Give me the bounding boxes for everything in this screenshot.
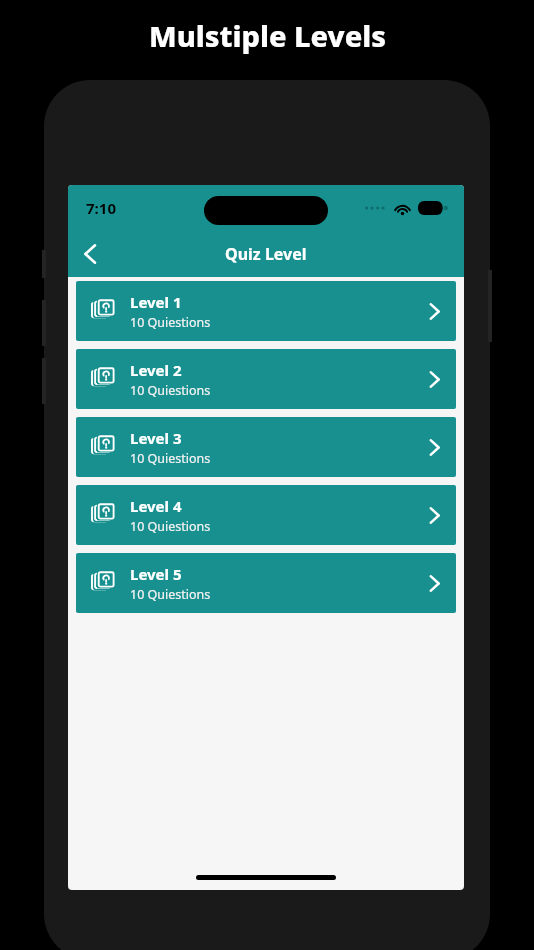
button[interactable]: Level 1	[76, 281, 456, 341]
button[interactable]: Level 5	[76, 553, 456, 613]
button[interactable]: Level 4	[76, 485, 456, 545]
staticText: 10 Quiestions	[130, 382, 211, 399]
staticText: Level 3	[130, 428, 182, 448]
staticText: Level 5	[130, 564, 182, 584]
staticText: 10 Quiestions	[130, 450, 211, 467]
staticText: 7:10	[86, 198, 116, 218]
staticText: Level 4	[130, 496, 182, 516]
staticText: Level 2	[130, 360, 182, 380]
button[interactable]: Level 3	[76, 417, 456, 477]
staticText: Quiz Level	[225, 243, 307, 265]
staticText: 10 Quiestions	[130, 518, 211, 535]
staticText: Mulstiple Levels	[149, 16, 386, 55]
staticText: Level 1	[130, 292, 182, 312]
button[interactable]: Back	[68, 232, 112, 276]
staticText: 10 Quiestions	[130, 586, 211, 603]
staticText: 10 Quiestions	[130, 314, 211, 331]
button[interactable]: Level 2	[76, 349, 456, 409]
